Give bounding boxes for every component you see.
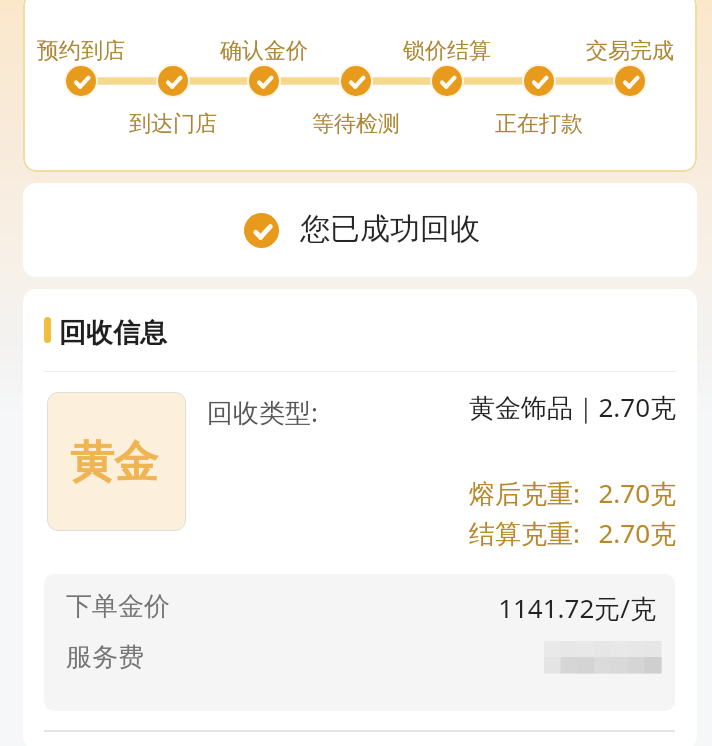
- button[interactable]: Step 3 completed: [247, 64, 281, 98]
- staticText: 熔后克重:: [469, 475, 580, 511]
- button[interactable]: Step 2 completed: [156, 64, 190, 98]
- staticText: 回收类型:: [207, 394, 318, 430]
- staticText: 等待检测: [312, 110, 400, 138]
- staticText: 2.70克: [598, 515, 676, 551]
- staticText: 服务费: [66, 641, 144, 674]
- button[interactable]: Step 4 completed: [339, 64, 373, 98]
- staticText: 2.70克: [598, 475, 676, 511]
- staticText: 黄金饰品｜2.70克: [468, 389, 676, 425]
- staticText: 锁价结算: [403, 37, 491, 65]
- button[interactable]: Step 1 completed: [23, 0, 697, 172]
- staticText: 1141.72元/克: [498, 590, 656, 626]
- staticText: 正在打款: [495, 110, 583, 138]
- staticText: 交易完成: [586, 37, 674, 65]
- button[interactable]: 黄金: [47, 392, 186, 531]
- other: Service fee hidden: [544, 641, 661, 673]
- staticText: 到达门店: [129, 110, 217, 138]
- staticText: 确认金价: [220, 37, 308, 65]
- button[interactable]: Step 6 completed: [522, 64, 556, 98]
- button[interactable]: Step 7 completed: [613, 64, 647, 98]
- staticText: 回收信息: [59, 316, 167, 350]
- staticText: 黄金: [70, 435, 158, 490]
- staticText: 预约到店: [37, 37, 125, 65]
- button[interactable]: Step 5 completed: [430, 64, 464, 98]
- staticText: 下单金价: [66, 590, 170, 623]
- button[interactable]: Recycling completed: [23, 183, 697, 277]
- staticText: 您已成功回收: [300, 210, 480, 248]
- button[interactable]: Step 1 completed: [64, 64, 98, 98]
- other: Recycling completed: [244, 213, 279, 248]
- staticText: 结算克重:: [469, 515, 580, 551]
